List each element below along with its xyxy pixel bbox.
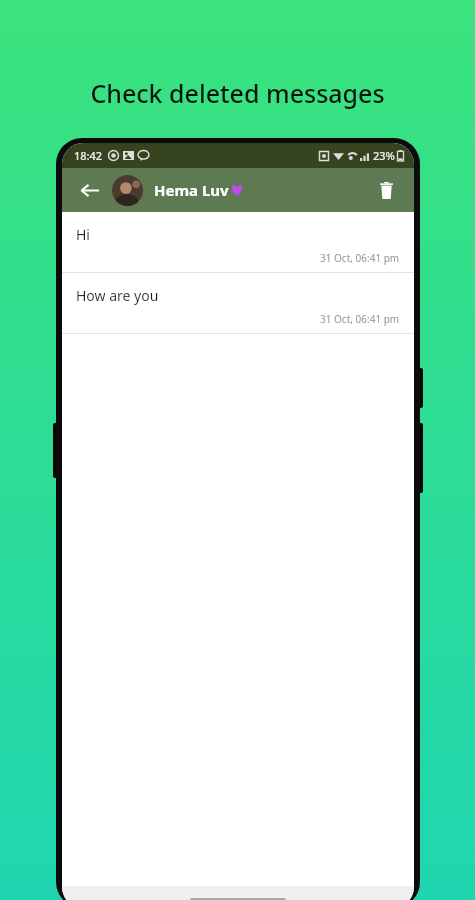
staticText: 18:42 (74, 148, 103, 163)
button[interactable]: Profile photo (112, 175, 143, 206)
button[interactable]: Hi (62, 212, 414, 273)
staticText: Hema Luv (154, 180, 229, 200)
staticText: Hi (76, 225, 90, 244)
staticText: 23% (373, 148, 395, 163)
staticText: How are you (76, 286, 159, 305)
button[interactable]: Delete (370, 174, 402, 206)
button[interactable]: Back (74, 175, 104, 205)
staticText: Check deleted messages (90, 76, 385, 110)
staticText: 31 Oct, 06:41 pm (320, 251, 400, 265)
button[interactable]: How are you (62, 273, 414, 334)
staticText: 31 Oct, 06:41 pm (320, 312, 400, 326)
